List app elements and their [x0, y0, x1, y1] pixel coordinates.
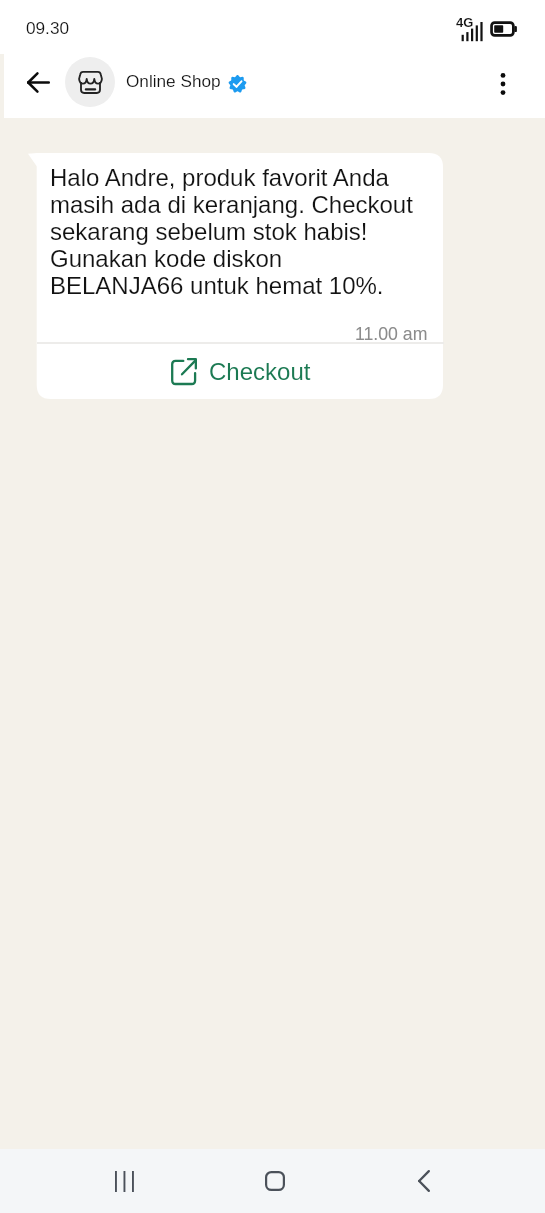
- button[interactable]: Halo Andre, produk favorit Anda masih ad…: [28, 153, 443, 399]
- button[interactable]: Back: [15, 62, 61, 103]
- button[interactable]: Recent apps: [99, 1149, 149, 1213]
- button[interactable]: More options: [487, 64, 519, 104]
- staticText: 4G: [456, 15, 474, 30]
- staticText: Halo Andre, produk favorit Anda masih ad…: [50, 164, 418, 299]
- button[interactable]: Back: [399, 1149, 449, 1213]
- button[interactable]: Checkout: [37, 344, 444, 398]
- button[interactable]: Home: [250, 1149, 300, 1213]
- staticText: Online Shop: [126, 71, 221, 90]
- staticText: 11.00 am: [355, 324, 428, 344]
- staticText: Checkout: [209, 358, 311, 385]
- staticText: 09.30: [26, 18, 70, 37]
